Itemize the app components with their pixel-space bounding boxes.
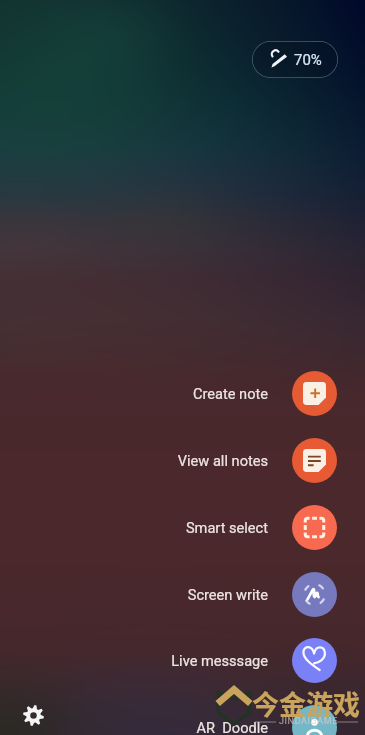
button[interactable]: View all notes [0,437,365,483]
staticText: View all notes [177,452,268,469]
button[interactable]: Create note [0,370,365,416]
staticText: Live messsage [171,652,268,669]
button[interactable]: Smart select [0,504,365,550]
button[interactable]: 70% [252,41,338,78]
button[interactable]: Live messsage [0,637,365,683]
staticText: AR Doodle [196,719,268,735]
staticText: JINDAIGAME [279,716,338,727]
staticText: Create note [192,385,268,402]
staticText: 70% [294,51,322,69]
button[interactable]: AR Doodle [0,704,365,735]
staticText: Screen write [187,586,268,603]
button[interactable]: Settings [15,697,51,733]
staticText: 今金游戏 [252,684,360,723]
staticText: Smart select [185,519,268,536]
button[interactable]: Screen write [0,571,365,617]
